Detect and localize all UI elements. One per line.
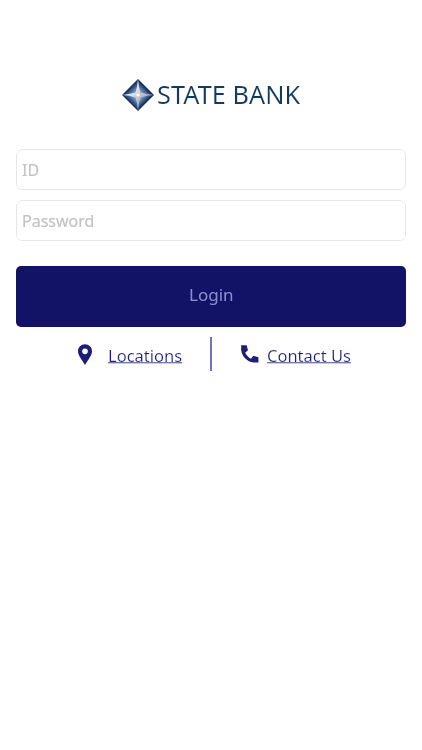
button[interactable]: Password <box>16 200 406 241</box>
button[interactable]: Login <box>16 266 406 327</box>
staticText: Locations <box>108 344 183 366</box>
other: Contact Us <box>240 344 259 363</box>
staticText: Password <box>22 210 95 232</box>
staticText: Login <box>189 283 234 306</box>
button[interactable]: Locations <box>70 337 191 371</box>
staticText: STATE BANK <box>157 77 301 111</box>
other: Locations <box>78 344 92 365</box>
button[interactable]: ID <box>16 149 406 190</box>
button[interactable]: Contact Us <box>232 337 359 371</box>
staticText: ID <box>22 159 40 181</box>
staticText: Contact Us <box>267 344 351 366</box>
